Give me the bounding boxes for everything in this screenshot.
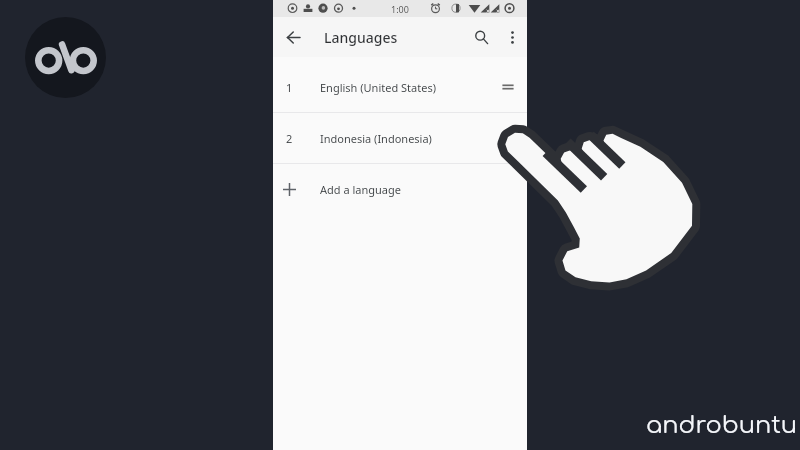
- button[interactable]: Search: [464, 20, 498, 54]
- button[interactable]: Back: [273, 17, 313, 57]
- staticText: Languages: [324, 28, 398, 47]
- other: Reorder: [489, 62, 527, 112]
- staticText: English (United States): [320, 80, 436, 95]
- button[interactable]: More options: [498, 23, 527, 52]
- other: Reorder: [489, 113, 527, 163]
- staticText: androbuntu: [646, 412, 798, 439]
- button[interactable]: Androbuntu logo: [25, 17, 106, 98]
- staticText: 2: [286, 131, 293, 146]
- staticText: 1:00: [391, 3, 409, 15]
- staticText: Indonesia (Indonesia): [320, 131, 432, 146]
- staticText: 1: [286, 80, 293, 95]
- button[interactable]: Add a language: [273, 164, 527, 214]
- button[interactable]: 2: [273, 113, 527, 163]
- button[interactable]: 1: [273, 62, 527, 112]
- staticText: Add a language: [320, 182, 401, 197]
